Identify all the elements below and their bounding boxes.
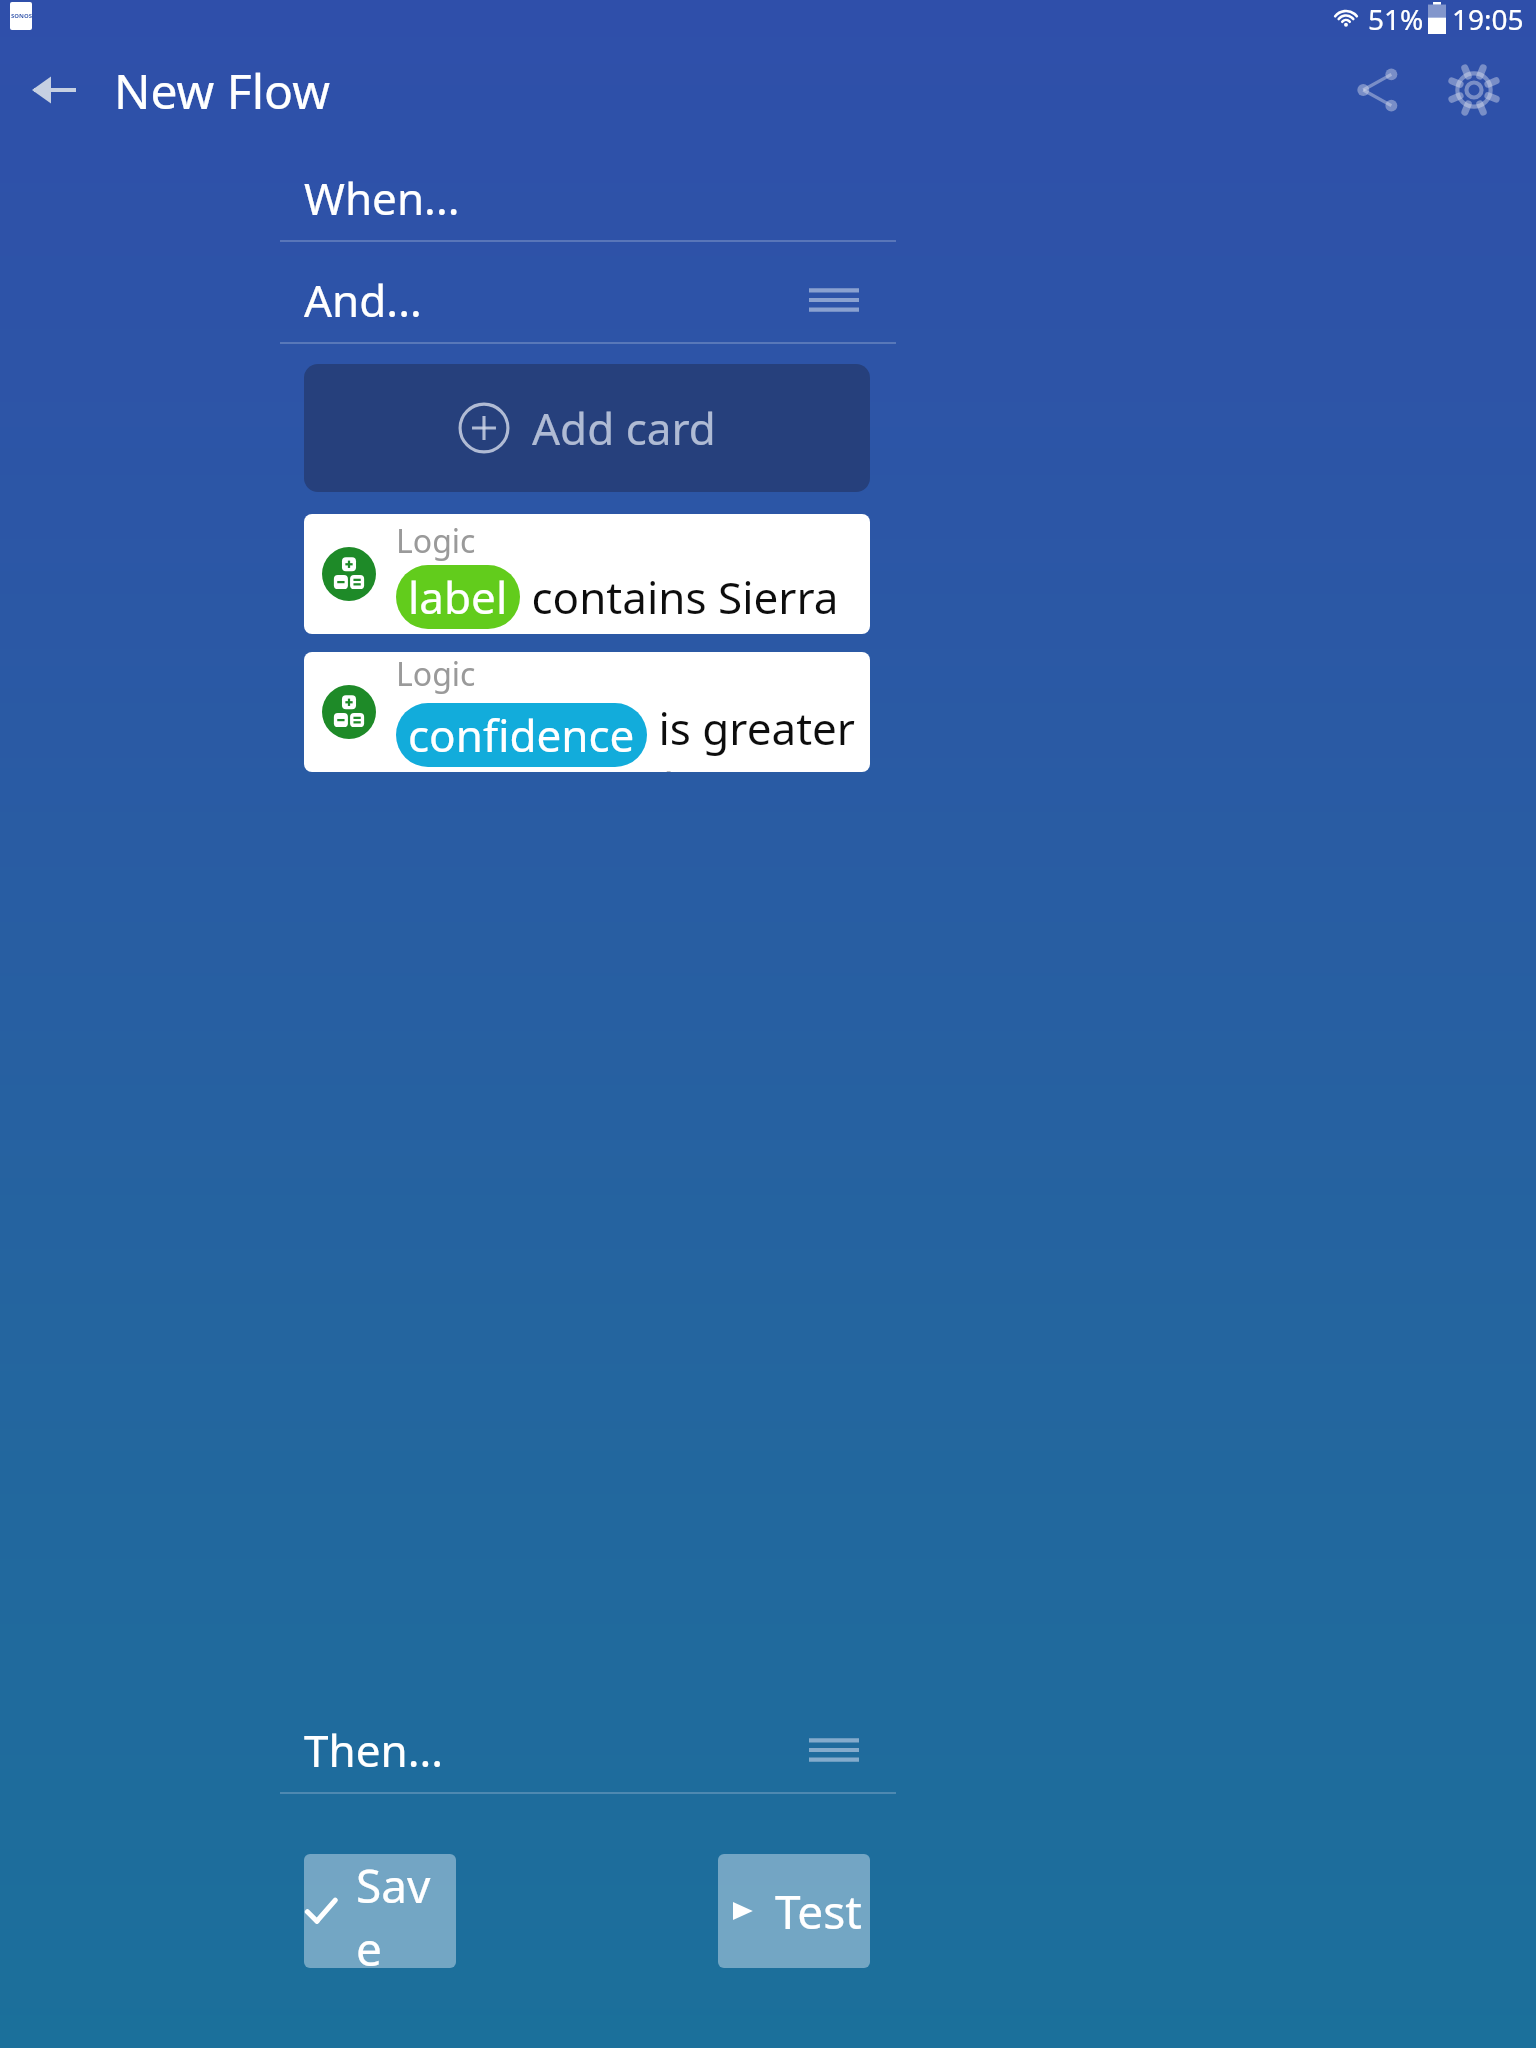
- staticText: SONOS: [11, 12, 32, 20]
- button[interactable]: And...: [304, 258, 870, 342]
- button[interactable]: Save: [304, 1854, 456, 1968]
- button[interactable]: When...: [304, 156, 870, 240]
- button[interactable]: Reorder cards: [798, 264, 870, 336]
- staticText: Logic: [396, 519, 476, 563]
- button[interactable]: Add card: [304, 364, 870, 492]
- staticText: New Flow: [114, 58, 330, 123]
- button[interactable]: Settings: [1432, 48, 1516, 132]
- staticText: Save: [356, 1854, 456, 1968]
- staticText: Logic: [396, 652, 476, 696]
- button[interactable]: Then...: [304, 1708, 870, 1792]
- button[interactable]: Logic: [304, 514, 870, 634]
- staticText: When...: [304, 168, 460, 228]
- staticText: Test: [775, 1880, 862, 1943]
- staticText: Then...: [304, 1720, 444, 1780]
- staticText: Add card: [532, 398, 716, 458]
- staticText: 19:05: [1452, 0, 1524, 36]
- staticText: confidence: [408, 705, 635, 765]
- button[interactable]: Logic: [304, 652, 870, 772]
- staticText: is greater than 80: [647, 698, 858, 772]
- staticText: contains Sierra: [520, 567, 839, 627]
- button[interactable]: Back: [14, 50, 94, 130]
- button[interactable]: Share: [1336, 48, 1420, 132]
- button[interactable]: Test: [718, 1854, 870, 1968]
- button[interactable]: Reorder cards: [798, 1714, 870, 1786]
- staticText: label: [408, 567, 508, 627]
- staticText: 51%: [1368, 0, 1424, 36]
- staticText: And...: [304, 270, 422, 330]
